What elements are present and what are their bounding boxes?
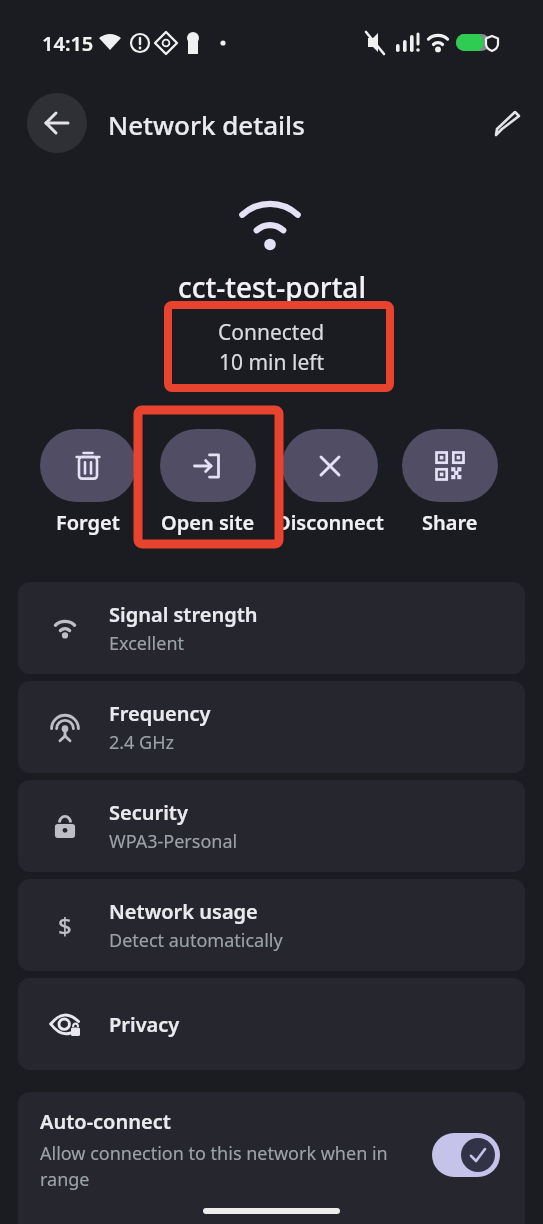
- staticText: $: [58, 909, 72, 942]
- button[interactable]: [27, 93, 87, 153]
- staticText: Security: [109, 799, 188, 826]
- button[interactable]: [490, 105, 526, 141]
- button[interactable]: [160, 429, 256, 502]
- staticText: Detect automatically: [109, 928, 283, 953]
- staticText: Excellent: [109, 631, 185, 656]
- staticText: Disconnect: [276, 509, 384, 536]
- button[interactable]: Security: [18, 780, 525, 872]
- staticText: Network usage: [109, 898, 258, 925]
- staticText: Open site: [161, 509, 255, 536]
- staticText: Connected: [218, 318, 325, 347]
- staticText: Frequency: [109, 700, 211, 727]
- staticText: 14:15: [42, 30, 94, 57]
- staticText: 10 min left: [219, 348, 325, 377]
- staticText: WPA3-Personal: [109, 829, 238, 854]
- staticText: Network details: [108, 107, 305, 142]
- button[interactable]: Auto-connect: [18, 1092, 525, 1224]
- button[interactable]: Privacy: [18, 978, 525, 1070]
- staticText: Share: [422, 509, 478, 536]
- staticText: Auto-connect: [40, 1108, 171, 1135]
- staticText: Signal strength: [109, 601, 258, 628]
- button[interactable]: Frequency: [18, 681, 525, 773]
- button[interactable]: [432, 1133, 500, 1177]
- button[interactable]: [40, 429, 136, 502]
- staticText: 2.4 GHz: [109, 730, 174, 755]
- button[interactable]: [282, 429, 378, 502]
- button[interactable]: [402, 429, 498, 502]
- button[interactable]: Signal strength: [18, 582, 525, 674]
- staticText: cct-test-portal: [178, 268, 366, 306]
- staticText: Privacy: [109, 1011, 180, 1038]
- staticText: Forget: [56, 509, 120, 536]
- button[interactable]: $: [18, 879, 525, 971]
- staticText: Allow connection to this network when in…: [40, 1141, 420, 1192]
